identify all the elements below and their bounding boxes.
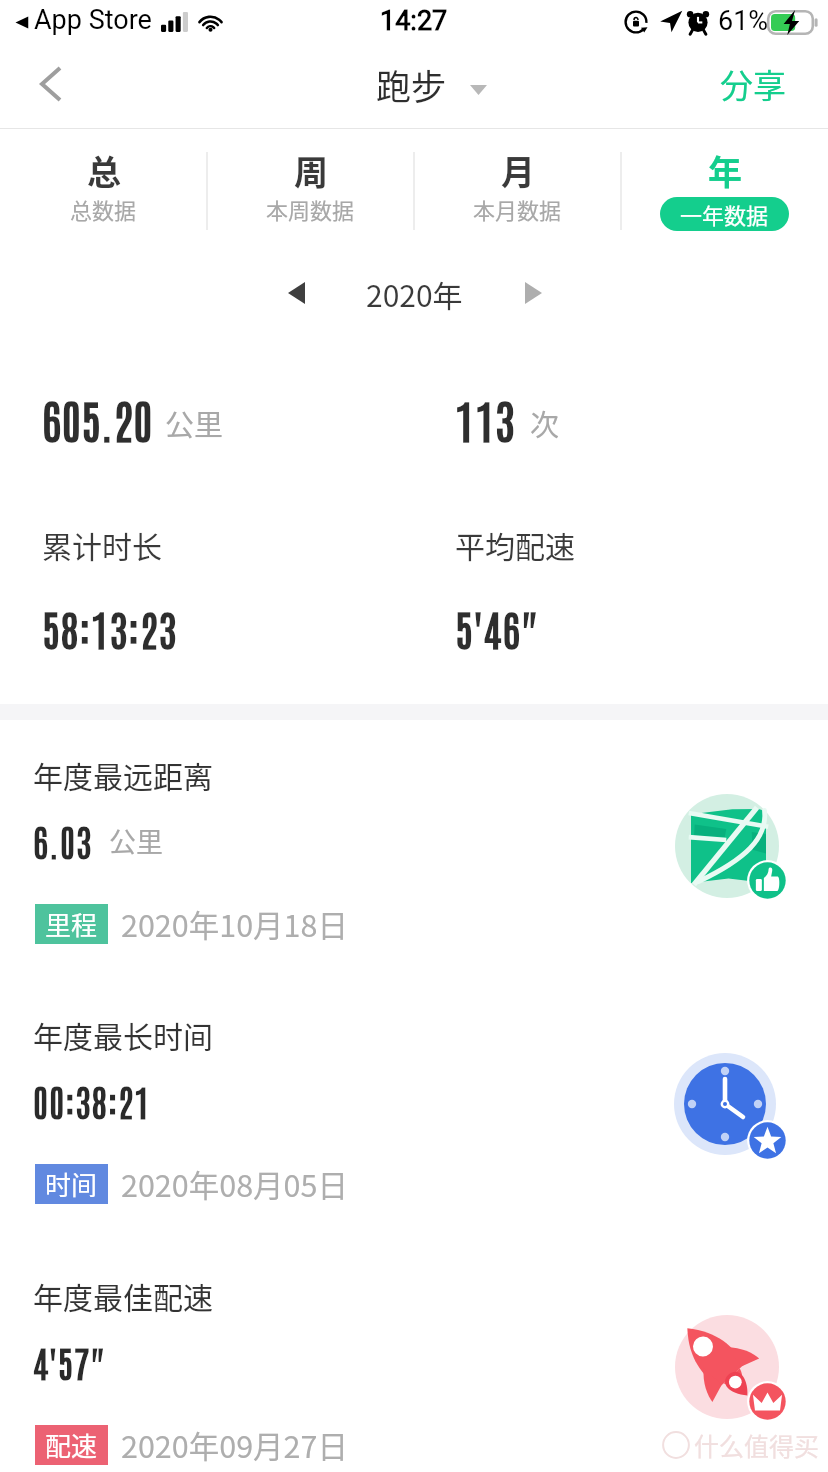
- staticText: 总: [87, 146, 121, 195]
- staticText: 公里: [109, 821, 163, 860]
- staticText: 什么值得买: [694, 1427, 820, 1463]
- staticText: 一年数据: [680, 198, 769, 230]
- staticText: 公里: [165, 402, 224, 444]
- button[interactable]: Back: [9, 42, 93, 126]
- staticText: 分享: [720, 60, 786, 108]
- staticText: 次: [530, 402, 560, 444]
- staticText: 平均配速: [455, 523, 575, 566]
- staticText: 年度最长时间: [33, 1013, 213, 1056]
- button[interactable]: 周: [207, 130, 414, 248]
- button[interactable]: Next year: [503, 263, 563, 323]
- staticText: 6.03: [33, 817, 93, 864]
- staticText: 年: [708, 146, 742, 195]
- staticText: 跑步: [376, 59, 447, 110]
- staticText: 年度最远距离: [33, 753, 213, 796]
- staticText: 2020年10月18日: [121, 902, 348, 946]
- button[interactable]: 年度最远距离: [0, 717, 828, 975]
- staticText: 配速: [45, 1426, 98, 1464]
- button[interactable]: 年: [621, 130, 828, 248]
- staticText: 总数据: [70, 193, 137, 225]
- staticText: 月: [501, 146, 535, 195]
- staticText: 2020年09月27日: [121, 1423, 348, 1467]
- staticText: 本月数据: [473, 193, 562, 225]
- staticText: 本周数据: [266, 193, 355, 225]
- staticText: 14:27: [380, 5, 448, 37]
- staticText: 周: [294, 146, 328, 195]
- button[interactable]: 年度最长时间: [0, 977, 828, 1235]
- staticText: 00:38:21: [33, 1077, 151, 1124]
- staticText: 4'57": [33, 1338, 105, 1385]
- button[interactable]: 总: [0, 130, 207, 248]
- button[interactable]: Previous year: [266, 263, 326, 323]
- staticText: 2020年: [366, 272, 463, 315]
- staticText: 累计时长: [42, 523, 162, 566]
- staticText: 里程: [45, 905, 98, 943]
- staticText: 58:13:23: [42, 600, 178, 654]
- button[interactable]: 月: [414, 130, 621, 248]
- staticText: 2020年08月05日: [121, 1162, 348, 1206]
- staticText: 113: [455, 389, 516, 449]
- staticText: 61%: [718, 5, 769, 37]
- staticText: 年度最佳配速: [33, 1274, 213, 1317]
- staticText: 605.20: [42, 389, 153, 449]
- button[interactable]: 跑步: [376, 59, 487, 110]
- button[interactable]: 年度最佳配速: [0, 1238, 828, 1472]
- staticText: 时间: [45, 1165, 98, 1203]
- staticText: 5'46": [455, 600, 538, 654]
- staticText: App Store: [34, 4, 152, 36]
- button[interactable]: 分享: [688, 42, 828, 126]
